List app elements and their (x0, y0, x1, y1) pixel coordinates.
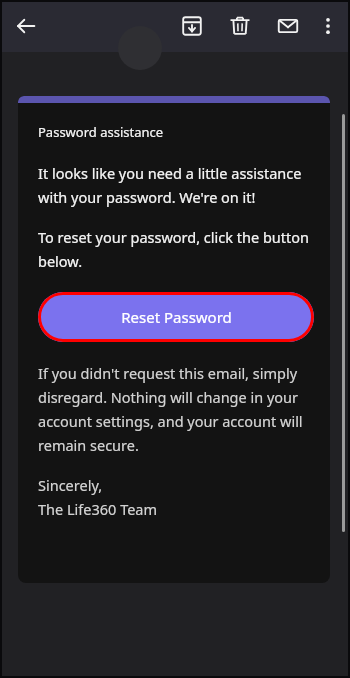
button[interactable]: Delete (220, 6, 260, 46)
button[interactable]: Back (6, 6, 46, 46)
button[interactable]: Reset Password (38, 292, 314, 342)
staticText: If you didn't request this email, simply… (38, 363, 314, 455)
staticText: It looks like you need a little assistan… (38, 163, 314, 207)
staticText: Password assistance (38, 123, 164, 141)
staticText: To reset your password, click the button… (38, 227, 314, 271)
button[interactable]: More options (310, 8, 346, 44)
staticText: Reset Password (121, 307, 232, 327)
button[interactable]: Archive (172, 6, 212, 46)
button[interactable]: Mark unread (268, 6, 308, 46)
staticText: Sincerely, The Life360 Team (38, 475, 158, 519)
